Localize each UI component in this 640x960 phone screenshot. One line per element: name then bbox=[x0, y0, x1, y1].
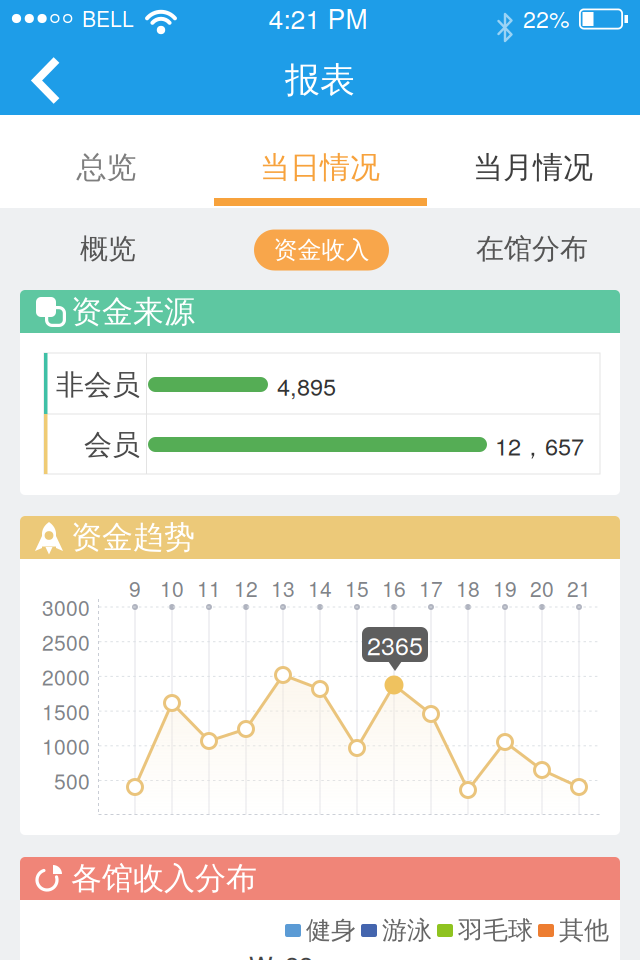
staticText: 概览 bbox=[80, 231, 136, 267]
staticText: 资金来源 bbox=[71, 292, 195, 332]
button[interactable]: 当月情况 bbox=[426, 115, 639, 220]
staticText: 会员 bbox=[84, 427, 140, 463]
button[interactable]: 在馆分布 bbox=[462, 227, 602, 271]
staticText: 15 bbox=[345, 573, 369, 603]
staticText: 资金趋势 bbox=[71, 518, 195, 557]
staticText: 4,895 bbox=[277, 369, 336, 402]
staticText: 各馆收入分布 bbox=[71, 859, 257, 898]
staticText: 资金收入 bbox=[273, 235, 369, 265]
staticText: 11 bbox=[197, 573, 221, 603]
button[interactable] bbox=[22, 52, 78, 109]
staticText: W: 22 bbox=[249, 946, 313, 960]
staticText: 500 bbox=[54, 765, 90, 796]
button[interactable]: 概览 bbox=[48, 227, 168, 271]
staticText: 当月情况 bbox=[473, 149, 593, 186]
staticText: 10 bbox=[160, 573, 184, 603]
staticText: 12 bbox=[234, 573, 258, 603]
staticText: 21 bbox=[567, 573, 591, 603]
staticText: 4:21 PM bbox=[268, 0, 367, 36]
staticText: 2365 bbox=[367, 627, 423, 662]
staticText: 1500 bbox=[42, 696, 90, 726]
staticText: BELL bbox=[82, 3, 134, 33]
staticText: 22% bbox=[523, 1, 569, 34]
staticText: 其他 bbox=[559, 915, 609, 946]
button[interactable]: 总览 bbox=[0, 115, 213, 220]
staticText: 1000 bbox=[42, 731, 90, 761]
staticText: 在馆分布 bbox=[476, 231, 588, 267]
staticText: 13 bbox=[271, 573, 295, 603]
staticText: 游泳 bbox=[382, 915, 432, 946]
staticText: 2000 bbox=[42, 661, 90, 691]
staticText: 报表 bbox=[285, 58, 355, 102]
staticText: 3000 bbox=[42, 592, 90, 622]
staticText: 17 bbox=[419, 573, 443, 603]
staticText: 非会员 bbox=[56, 367, 140, 403]
staticText: 12，657 bbox=[495, 428, 584, 462]
button[interactable]: 当日情况 bbox=[213, 115, 426, 220]
staticText: 16 bbox=[382, 573, 406, 603]
staticText: 当日情况 bbox=[260, 149, 380, 186]
staticText: 9 bbox=[129, 573, 141, 603]
staticText: 健身 bbox=[306, 915, 356, 946]
staticText: 18 bbox=[456, 573, 480, 603]
staticText: 19 bbox=[493, 573, 517, 603]
button[interactable]: 资金收入 bbox=[254, 229, 389, 270]
staticText: 羽毛球 bbox=[458, 915, 533, 946]
staticText: 20 bbox=[530, 573, 554, 603]
staticText: 总览 bbox=[76, 149, 136, 186]
staticText: 14 bbox=[308, 573, 332, 603]
staticText: 2500 bbox=[42, 627, 90, 657]
